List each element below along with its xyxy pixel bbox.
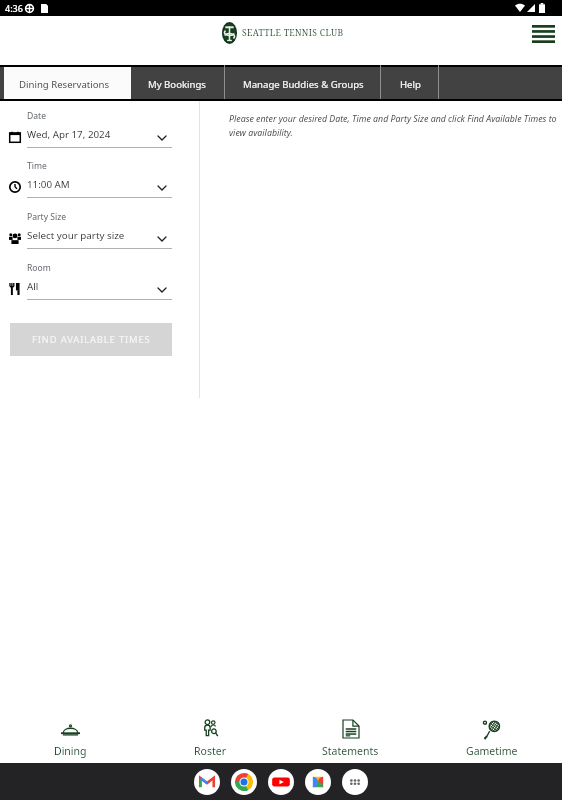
button[interactable]: Menu bbox=[527, 19, 560, 49]
button[interactable]: Party Size bbox=[0, 213, 199, 263]
button[interactable]: Photos bbox=[305, 769, 331, 795]
staticText: Time bbox=[27, 160, 47, 172]
button[interactable]: All apps bbox=[342, 769, 368, 795]
staticText: Please enter your desired Date, Time and… bbox=[229, 113, 562, 138]
staticText: SEATTLE TENNIS CLUB bbox=[242, 27, 344, 39]
staticText: Dining Reservations bbox=[19, 78, 110, 91]
button[interactable]: Gametime bbox=[421, 701, 562, 763]
button[interactable]: Roster bbox=[140, 701, 280, 763]
staticText: Wed, Apr 17, 2024 bbox=[27, 128, 111, 141]
staticText: Room bbox=[27, 262, 51, 274]
button[interactable]: Gmail bbox=[194, 769, 220, 795]
staticText: Dining bbox=[54, 744, 87, 758]
button[interactable]: YouTube bbox=[268, 769, 294, 795]
staticText: Help bbox=[400, 78, 421, 91]
staticText: Date bbox=[27, 110, 47, 122]
staticText: Gametime bbox=[466, 744, 518, 758]
staticText: Party Size bbox=[27, 211, 67, 223]
staticText: 11:00 AM bbox=[27, 178, 70, 191]
button[interactable]: Dining bbox=[0, 701, 140, 763]
staticText: My Bookings bbox=[148, 78, 206, 91]
button[interactable]: Room bbox=[0, 264, 199, 314]
staticText: Statements bbox=[322, 744, 379, 758]
button[interactable]: Time bbox=[0, 162, 199, 212]
staticText: Select your party size bbox=[27, 229, 125, 242]
button[interactable]: Dining Reservations bbox=[0, 65, 129, 101]
button[interactable]: Help bbox=[381, 65, 439, 101]
staticText: All bbox=[27, 280, 39, 293]
button[interactable]: FIND AVAILABLE TIMES bbox=[10, 323, 172, 356]
staticText: FIND AVAILABLE TIMES bbox=[32, 333, 151, 346]
staticText: 4:36 bbox=[5, 2, 23, 14]
staticText: Manage Buddies & Groups bbox=[243, 78, 364, 91]
button[interactable]: Date bbox=[0, 112, 199, 162]
button[interactable]: Manage Buddies & Groups bbox=[225, 65, 381, 101]
button[interactable]: Chrome bbox=[231, 769, 257, 795]
button[interactable]: My Bookings bbox=[129, 65, 225, 101]
button[interactable]: Statements bbox=[280, 701, 421, 763]
staticText: Roster bbox=[194, 744, 226, 758]
